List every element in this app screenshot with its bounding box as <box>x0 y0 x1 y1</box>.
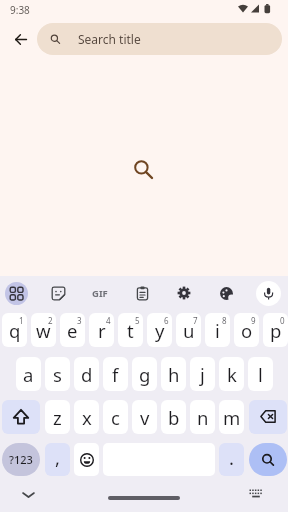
button[interactable] <box>249 400 287 434</box>
staticText: Search title <box>78 31 141 47</box>
button[interactable]: o <box>234 313 259 347</box>
button[interactable]: q <box>2 313 27 347</box>
staticText: f <box>112 362 119 387</box>
button[interactable] <box>248 488 264 500</box>
button[interactable]: j <box>190 357 215 391</box>
staticText: 6 <box>164 315 169 326</box>
button[interactable]: u <box>176 313 201 347</box>
staticText: u <box>183 318 195 343</box>
button[interactable]: d <box>74 357 99 391</box>
button[interactable]: h <box>161 357 186 391</box>
button[interactable]: z <box>45 400 70 434</box>
staticText: 1 <box>19 315 24 326</box>
button[interactable]: m <box>219 400 244 434</box>
staticText: ?123 <box>9 452 33 467</box>
button[interactable]: . <box>219 443 244 476</box>
staticText: v <box>140 405 150 430</box>
button[interactable] <box>210 276 242 310</box>
button[interactable]: p <box>263 313 288 347</box>
button[interactable] <box>42 276 74 310</box>
button[interactable]: v <box>132 400 157 434</box>
button[interactable]: t <box>118 313 143 347</box>
button[interactable] <box>2 400 40 434</box>
staticText: 8 <box>222 315 227 326</box>
staticText: h <box>168 362 180 387</box>
button[interactable] <box>252 276 284 310</box>
button[interactable] <box>74 443 99 476</box>
staticText: y <box>155 318 165 343</box>
button[interactable]: x <box>74 400 99 434</box>
staticText: p <box>270 318 282 343</box>
staticText: 2 <box>48 315 53 326</box>
staticText: 4 <box>106 315 111 326</box>
staticText: w <box>36 318 51 343</box>
button[interactable]: l <box>248 357 273 391</box>
button[interactable]: w <box>31 313 56 347</box>
button[interactable] <box>22 492 35 498</box>
staticText: 5 <box>135 315 140 326</box>
staticText: x <box>82 405 92 430</box>
staticText: t <box>127 318 134 343</box>
button[interactable]: GIF <box>84 276 116 310</box>
button[interactable]: a <box>16 357 41 391</box>
staticText: o <box>241 318 253 343</box>
button[interactable] <box>126 276 158 310</box>
button[interactable] <box>0 276 32 310</box>
button[interactable] <box>249 443 287 476</box>
button[interactable] <box>8 27 33 52</box>
staticText: q <box>9 318 21 343</box>
staticText: n <box>197 405 209 430</box>
staticText: i <box>215 318 220 343</box>
button[interactable]: f <box>103 357 128 391</box>
button[interactable]: g <box>132 357 157 391</box>
button[interactable]: , <box>45 443 70 476</box>
button[interactable]: s <box>45 357 70 391</box>
staticText: 9:38 <box>10 3 30 17</box>
staticText: 9 <box>251 315 256 326</box>
staticText: 7 <box>193 315 198 326</box>
staticText: j <box>200 362 205 387</box>
button[interactable]: e <box>60 313 85 347</box>
staticText: 3 <box>77 315 82 326</box>
staticText: g <box>139 362 151 387</box>
staticText: b <box>168 405 180 430</box>
staticText: 0 <box>280 315 285 326</box>
button[interactable]: i <box>205 313 230 347</box>
staticText: m <box>223 405 241 430</box>
button[interactable]: n <box>190 400 215 434</box>
button[interactable]: ?123 <box>2 443 40 476</box>
button[interactable]: b <box>161 400 186 434</box>
staticText: a <box>23 362 34 387</box>
staticText: z <box>53 405 62 430</box>
button[interactable]: r <box>89 313 114 347</box>
staticText: . <box>229 445 234 470</box>
button[interactable]: Search title <box>37 23 282 55</box>
button[interactable]: c <box>103 400 128 434</box>
button[interactable]: k <box>219 357 244 391</box>
staticText: e <box>67 318 78 343</box>
button[interactable] <box>108 496 180 500</box>
staticText: s <box>53 362 62 387</box>
staticText: GIF <box>92 287 108 300</box>
staticText: , <box>55 445 60 470</box>
button[interactable] <box>168 276 200 310</box>
staticText: r <box>98 318 106 343</box>
staticText: l <box>258 362 263 387</box>
button[interactable]: y <box>147 313 172 347</box>
staticText: c <box>111 405 120 430</box>
staticText: d <box>81 362 93 387</box>
staticText: k <box>227 362 237 387</box>
